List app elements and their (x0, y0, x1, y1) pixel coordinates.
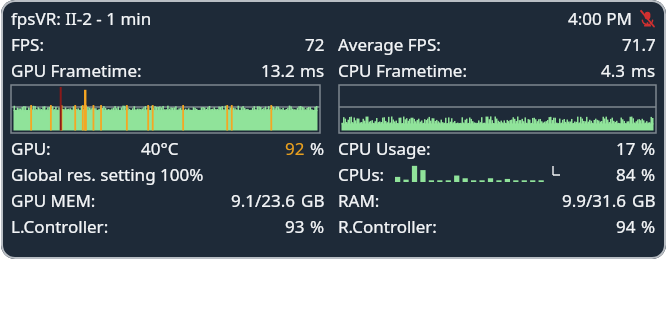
button[interactable]: L.Controller: (11, 213, 325, 239)
staticText: % (310, 215, 325, 238)
button[interactable]: CPU Frametime: (338, 57, 656, 83)
staticText: 17 (616, 137, 636, 160)
staticText: CPU Usage: (338, 137, 431, 160)
button[interactable]: GPU MEM: (11, 187, 325, 213)
button[interactable]: FPS: (11, 31, 325, 57)
staticText: % (641, 215, 656, 238)
staticText: CPU Frametime: (338, 59, 467, 82)
staticText: R.Controller: (338, 215, 437, 238)
staticText: GPU Frametime: (11, 59, 142, 82)
button[interactable]: CPU Usage: (338, 135, 656, 161)
staticText: 13.2 (261, 59, 295, 82)
button[interactable]: CPUs: (338, 161, 656, 187)
staticText: Global res. setting 100% (11, 163, 204, 186)
staticText: L.Controller: (11, 215, 109, 238)
staticText: 4:00 PM (568, 7, 632, 30)
button[interactable]: Global res. setting 100% (11, 161, 325, 187)
staticText: 94 (616, 215, 636, 238)
button[interactable]: R.Controller: (338, 213, 656, 239)
staticText: fpsVR: II-2 - 1 min (11, 7, 152, 30)
staticText: Average FPS: (338, 33, 441, 56)
staticText: 9.1/23.6 (231, 189, 296, 212)
staticText: 40°C (141, 137, 179, 160)
staticText: RAM: (338, 189, 380, 212)
button[interactable]: GPU Frametime: (11, 57, 325, 83)
button[interactable]: Microphone muted (639, 10, 656, 27)
staticText: % (641, 163, 656, 186)
staticText: GPU MEM: (11, 189, 96, 212)
staticText: ms (300, 59, 325, 82)
staticText: GPU: (11, 137, 51, 160)
button[interactable]: Average FPS: (338, 31, 656, 57)
staticText: ms (631, 59, 656, 82)
button[interactable]: fpsVR: II-2 - 1 min (11, 5, 656, 31)
staticText: 72 (305, 33, 325, 56)
staticText: CPUs: (338, 163, 385, 186)
staticText: 9.9/31.6 (562, 189, 627, 212)
staticText: 84 (616, 163, 636, 186)
staticText: % (310, 137, 325, 160)
staticText: GB (632, 189, 656, 212)
staticText: 71.7 (622, 33, 656, 56)
staticText: % (641, 137, 656, 160)
staticText: FPS: (11, 33, 44, 56)
staticText: 93 (285, 215, 305, 238)
button[interactable]: RAM: (338, 187, 656, 213)
staticText: 92 (285, 137, 305, 160)
button[interactable]: GPU: (11, 135, 325, 161)
staticText: 4.3 (601, 59, 626, 82)
staticText: GB (301, 189, 325, 212)
